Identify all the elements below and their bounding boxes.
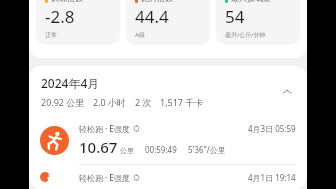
button[interactable]: 训练指数 [36,0,120,45]
staticText: 10.67 [79,137,118,157]
button[interactable]: 轻松跑 · E强度 [29,116,307,165]
staticText: 5'36"/公里 [188,144,226,155]
button[interactable]: 轻松跑 · E强度 [29,165,307,189]
staticText: 00:59:49 [145,144,177,155]
staticText: A级 [135,31,145,39]
staticText: 训练指数 [51,0,83,3]
staticText: 54 [225,5,245,28]
staticText: 跑力指数 [141,0,173,3]
staticText: 轻松跑 · E强度 [79,172,130,182]
staticText: -2.8 [45,5,75,28]
staticText: 2024年4月 [41,75,100,91]
button[interactable]: 最大摄氧量 [216,0,300,45]
other: Collapse [279,84,295,100]
staticText: 2 次 [135,96,152,108]
staticText: 4月3日 05:59 [248,123,296,134]
staticText: 20.92 公里 [41,96,85,108]
button[interactable]: 跑力指数 [126,0,210,45]
staticText: 毫升/公斤/分钟 [225,31,266,39]
staticText: 公里 [120,146,134,155]
staticText: 44.4 [135,5,169,28]
staticText: 2.0 小时 [93,96,127,108]
staticText: 轻松跑 · E强度 [79,123,130,134]
staticText: 4月1日 19:14 [248,172,296,182]
staticText: 最大摄氧量 [231,0,271,3]
staticText: 1,517 千卡 [160,96,204,108]
button[interactable]: 2024年4月 [29,66,307,116]
staticText: 正常 [45,31,57,39]
